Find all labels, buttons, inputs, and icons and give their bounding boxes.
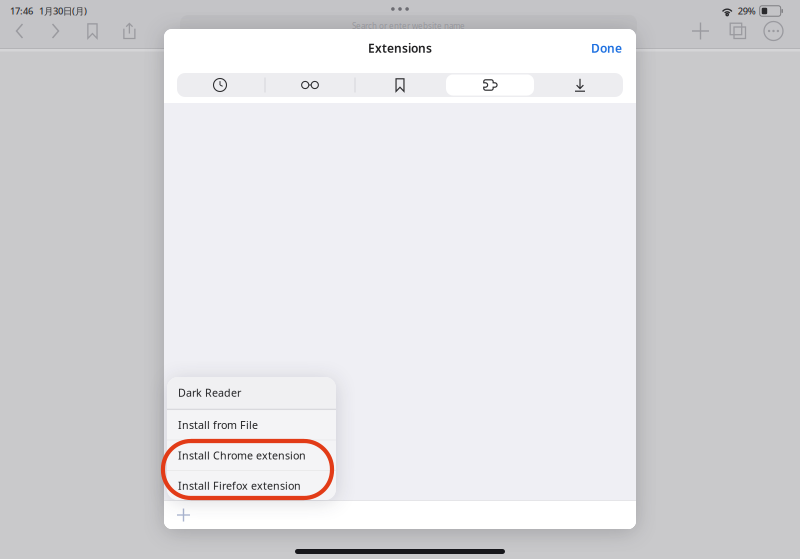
button[interactable]: New Tab [692,22,709,39]
button[interactable]: Back [15,23,24,39]
button[interactable]: Add extension [164,500,190,529]
staticText: Dark Reader [178,386,241,400]
button[interactable]: Install Firefox extension [167,471,336,500]
staticText: Install Chrome extension [178,448,306,462]
staticText: Install from File [178,418,258,432]
button[interactable]: Install Chrome extension [167,440,336,470]
button[interactable]: Forward [51,23,60,39]
button[interactable]: Reading List [265,72,354,97]
button[interactable]: Downloads [535,72,624,97]
button[interactable]: More [764,21,783,40]
button[interactable]: Share [123,22,136,39]
button[interactable]: History [175,72,264,97]
button[interactable]: Bookmarks [355,72,444,97]
staticText: 29% [738,5,756,17]
staticText: Done [591,40,622,56]
staticText: 17:46 [10,5,33,17]
button[interactable]: Dark Reader [167,377,336,409]
button[interactable]: Done [586,36,627,60]
staticText: Install Firefox extension [178,478,301,493]
button[interactable]: Install from File [167,410,336,440]
staticText: 1月30日(月) [39,5,87,17]
staticText: Extensions [368,40,432,56]
button[interactable]: Tabs [729,22,747,40]
staticText: Search or enter website name [352,21,465,31]
button[interactable]: Bookmarks [87,23,98,39]
button[interactable]: Extensions [445,72,534,97]
